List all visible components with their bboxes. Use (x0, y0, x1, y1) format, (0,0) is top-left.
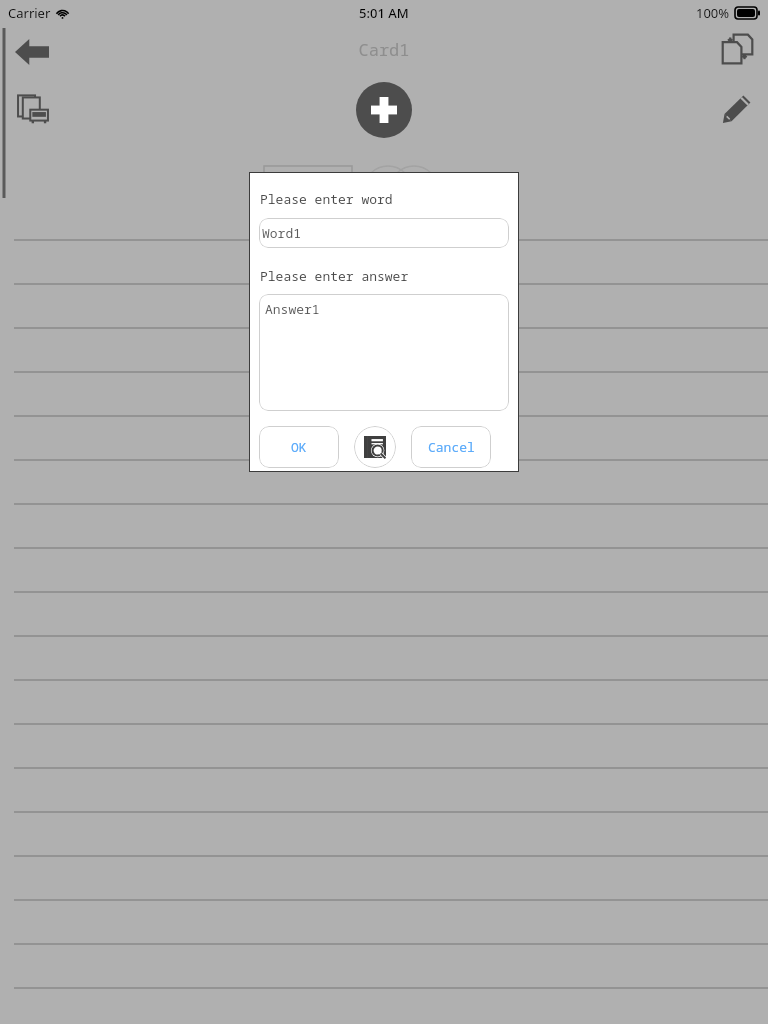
staticText: Word1 (262, 224, 302, 242)
button[interactable]: Cancel (411, 426, 491, 468)
button[interactable]: Dictionary lookup (354, 426, 396, 468)
button[interactable]: Edit (712, 84, 762, 134)
button[interactable]: Answer1 (259, 294, 509, 411)
button[interactable]: Word1 (259, 218, 509, 248)
staticText: OK (291, 438, 307, 456)
staticText: Answer1 (265, 300, 320, 318)
staticText: Carrier (8, 4, 51, 22)
staticText: Card1 (0, 38, 768, 61)
button[interactable]: Add (356, 82, 412, 138)
staticText: 100% (696, 4, 730, 22)
button[interactable]: Copy card (714, 26, 760, 72)
staticText: Please enter word (260, 190, 393, 208)
staticText: Cancel (428, 438, 475, 456)
staticText: 5:01 AM (359, 4, 409, 22)
button[interactable]: Card history (8, 84, 58, 134)
staticText: Please enter answer (260, 267, 409, 285)
button[interactable]: Back (8, 28, 56, 76)
button[interactable]: OK (259, 426, 339, 468)
